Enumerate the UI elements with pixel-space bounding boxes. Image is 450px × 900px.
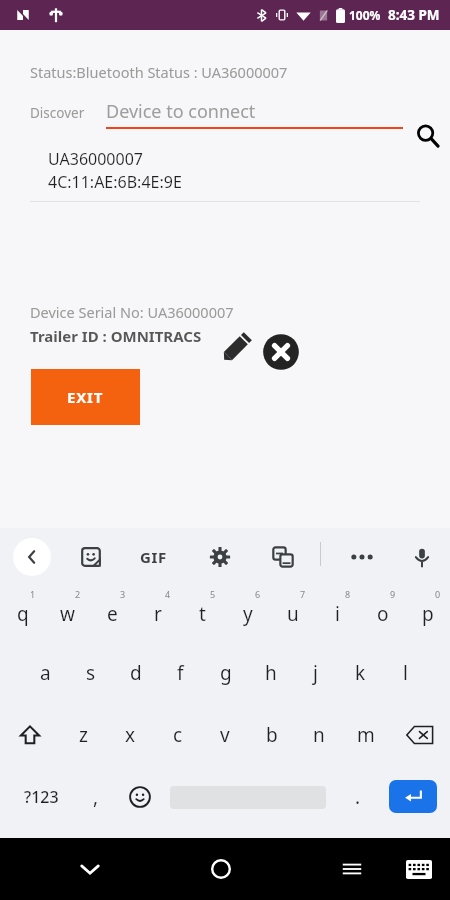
button[interactable]: Back — [62, 841, 118, 897]
button[interactable]: , — [74, 766, 118, 828]
button[interactable]: o — [360, 578, 405, 642]
button[interactable]: f — [158, 642, 203, 704]
button[interactable]: Stickers — [73, 539, 109, 575]
staticText: , — [93, 784, 99, 810]
staticText: b — [266, 722, 278, 748]
staticText: c — [173, 722, 183, 748]
button[interactable]: Edit Trailer ID — [208, 320, 264, 376]
staticText: o — [377, 601, 389, 627]
button[interactable]: p — [405, 578, 450, 642]
staticText: y — [243, 601, 253, 627]
button[interactable]: Home — [193, 841, 249, 897]
button[interactable]: Clear Trailer ID — [255, 326, 307, 378]
button[interactable]: Shift — [0, 704, 60, 766]
button[interactable]: r — [135, 578, 180, 642]
button[interactable]: EXIT — [31, 369, 140, 425]
button[interactable]: Emoji — [118, 766, 162, 828]
button[interactable]: y — [225, 578, 270, 642]
staticText: 9 — [390, 588, 396, 600]
button[interactable]: More options — [340, 542, 384, 572]
staticText: p — [422, 601, 434, 627]
staticText: z — [79, 722, 88, 748]
button[interactable]: Recent apps — [324, 841, 380, 897]
staticText: e — [107, 601, 118, 627]
staticText: a — [40, 660, 51, 686]
staticText: r — [154, 601, 162, 627]
staticText: Status:Bluetooth Status : UA36000007 — [30, 62, 288, 82]
button[interactable]: a — [22, 642, 68, 704]
button[interactable]: Search — [408, 116, 448, 156]
button[interactable]: UA36000007 — [0, 148, 450, 192]
staticText: s — [86, 660, 96, 686]
button[interactable]: Close toolbar — [13, 538, 51, 576]
staticText: t — [199, 601, 206, 627]
staticText: g — [220, 660, 232, 686]
staticText: EXIT — [67, 387, 104, 407]
staticText: x — [125, 722, 136, 748]
staticText: 8:43 PM — [388, 6, 440, 24]
staticText: 1 — [30, 588, 36, 600]
button[interactable]: k — [338, 642, 383, 704]
button[interactable]: d — [113, 642, 158, 704]
staticText: n — [313, 722, 325, 748]
button[interactable]: g — [203, 642, 248, 704]
staticText: q — [17, 601, 29, 627]
staticText: l — [403, 660, 408, 686]
button[interactable]: v — [201, 704, 248, 766]
staticText: m — [357, 722, 375, 748]
button[interactable]: . — [338, 766, 378, 828]
staticText: d — [130, 660, 142, 686]
button[interactable]: z — [60, 704, 107, 766]
button[interactable]: Switch keyboard — [394, 844, 444, 894]
staticText: k — [355, 660, 366, 686]
staticText: u — [287, 601, 299, 627]
button[interactable]: Voice input — [404, 540, 440, 576]
staticText: GIF — [140, 547, 167, 567]
button[interactable]: l — [383, 642, 428, 704]
button[interactable]: Keyboard settings — [202, 539, 238, 575]
staticText: 100% — [349, 7, 381, 23]
staticText: Device Serial No: UA36000007 — [30, 302, 234, 322]
staticText: i — [335, 601, 340, 627]
button[interactable]: s — [68, 642, 113, 704]
staticText: v — [220, 722, 230, 748]
staticText: Device to connect — [106, 99, 256, 124]
staticText: . — [355, 784, 361, 810]
staticText: j — [313, 660, 318, 686]
staticText: Trailer ID : OMNITRACS — [30, 326, 202, 346]
button[interactable]: m — [342, 704, 389, 766]
button[interactable]: b — [248, 704, 295, 766]
button[interactable]: Enter — [389, 780, 437, 813]
button[interactable]: j — [293, 642, 338, 704]
staticText: ?123 — [24, 786, 59, 808]
staticText: 2 — [75, 588, 81, 600]
button[interactable]: q — [0, 578, 45, 642]
button[interactable]: GIF — [131, 542, 175, 572]
button[interactable]: n — [295, 704, 342, 766]
button[interactable]: e — [90, 578, 135, 642]
staticText: UA36000007 — [48, 148, 143, 170]
button[interactable]: u — [270, 578, 315, 642]
staticText: 5 — [210, 588, 216, 600]
staticText: w — [60, 601, 75, 627]
button[interactable]: c — [154, 704, 201, 766]
button[interactable]: x — [107, 704, 154, 766]
staticText: 3 — [120, 588, 126, 600]
staticText: 8 — [345, 588, 351, 600]
staticText: 4C:11:AE:6B:4E:9E — [48, 171, 182, 193]
staticText: 4 — [165, 588, 171, 600]
button[interactable]: h — [248, 642, 293, 704]
button[interactable]: i — [315, 578, 360, 642]
staticText: f — [177, 660, 184, 686]
button[interactable]: ?123 — [8, 766, 74, 828]
staticText: 6 — [255, 588, 261, 600]
staticText: 7 — [300, 588, 306, 600]
button[interactable]: w — [45, 578, 90, 642]
button[interactable]: t — [180, 578, 225, 642]
staticText: 0 — [435, 588, 441, 600]
button[interactable]: Backspace — [389, 704, 450, 766]
button[interactable]: Translate — [265, 539, 301, 575]
staticText: h — [265, 660, 277, 686]
staticText: Discover — [30, 104, 85, 122]
